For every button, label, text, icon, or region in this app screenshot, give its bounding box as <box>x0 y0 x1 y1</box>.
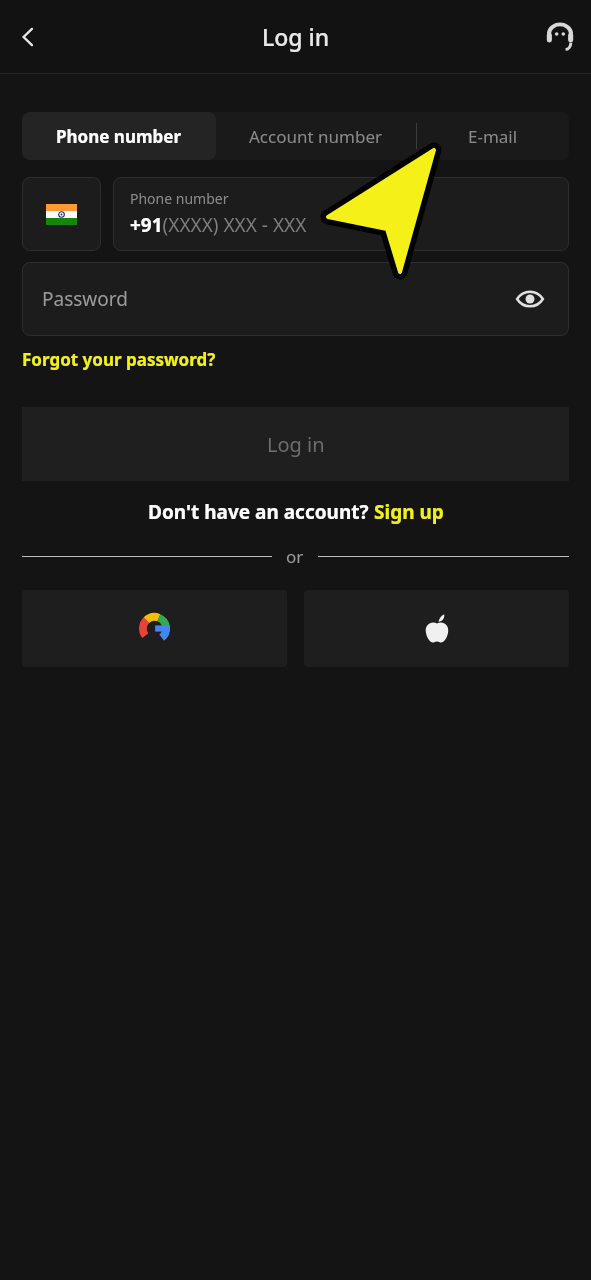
button[interactable]: Back <box>6 15 50 59</box>
button[interactable]: Forgot your password? <box>22 348 216 371</box>
staticText: or <box>286 545 304 568</box>
button[interactable]: Phone number <box>113 177 569 251</box>
button[interactable]: Select country code <box>22 177 101 251</box>
staticText: Log in <box>267 431 325 458</box>
button[interactable]: Customer support <box>537 14 583 60</box>
staticText: Password <box>42 286 128 312</box>
staticText: Don't have an account? <box>148 499 374 525</box>
button[interactable]: Sign in with Google <box>22 590 287 667</box>
staticText: Sign up <box>374 499 444 525</box>
staticText: Log in <box>262 21 330 52</box>
button[interactable]: Sign in with Apple <box>304 590 569 667</box>
button[interactable]: E-mail <box>417 112 569 160</box>
button[interactable]: Sign up <box>374 499 444 525</box>
staticText: Phone number <box>130 189 229 208</box>
button[interactable]: Account number <box>216 112 416 160</box>
staticText: Phone number <box>56 125 182 148</box>
button[interactable]: Show password <box>513 282 547 316</box>
button[interactable]: Phone number <box>22 112 216 160</box>
staticText: E-mail <box>468 125 518 148</box>
button[interactable]: Log in <box>22 407 569 481</box>
staticText: +91(XXXX) XXX - XXX <box>130 212 307 238</box>
staticText: Account number <box>249 125 383 148</box>
button[interactable]: Password <box>22 262 569 336</box>
